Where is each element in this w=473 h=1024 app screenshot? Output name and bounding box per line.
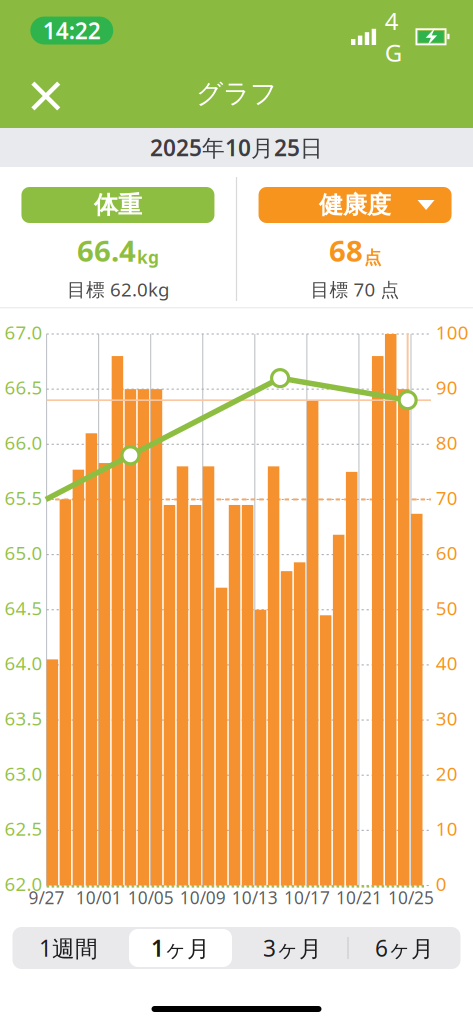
button[interactable]: 1ヶ月 [124,927,236,969]
staticText: 1週間 [39,933,98,963]
staticText: 66.0 [4,430,42,455]
staticText: 68 [329,231,363,270]
staticText: 64.0 [4,651,42,675]
button[interactable]: 閉じる [20,67,72,119]
staticText: 1ヶ月 [151,933,210,963]
button[interactable]: 6ヶ月 [348,927,460,969]
staticText: 10/21 [336,886,382,909]
button[interactable]: 1週間 [12,927,124,969]
staticText: 6ヶ月 [375,933,434,963]
staticText: 66.4 [77,231,136,270]
staticText: 70 [436,485,458,510]
button[interactable]: 3ヶ月 [236,927,348,969]
staticText: 10/01 [76,886,122,909]
staticText: 66.5 [4,375,42,400]
staticText: 点 [364,247,381,268]
staticText: 64.5 [4,596,42,620]
staticText: 目標 70 点 [311,277,400,302]
staticText: 80 [436,430,458,455]
staticText: 63.0 [4,761,42,786]
button[interactable]: 体重 [21,187,214,223]
staticText: 10/13 [232,886,278,909]
staticText: 10/05 [128,886,174,909]
staticText: 目標 62.0kg [67,277,169,302]
staticText: 67.0 [4,320,42,345]
staticText: 2025年10月25日 [150,132,323,162]
staticText: 4G [385,5,402,68]
staticText: 90 [436,375,458,400]
staticText: 0 [436,871,447,896]
staticText: 9/27 [29,886,65,909]
staticText: 3ヶ月 [263,933,322,963]
staticText: 14:22 [43,15,101,45]
staticText: 20 [436,761,458,786]
staticText: 60 [436,540,458,565]
staticText: 10 [436,816,458,841]
staticText: 体重 [94,190,142,220]
staticText: 65.0 [4,540,42,565]
button[interactable]: 健康度 [259,187,452,223]
staticText: 63.5 [4,706,42,731]
staticText: 10/25 [388,886,434,909]
staticText: kg [137,245,159,268]
staticText: 10/17 [284,886,330,909]
staticText: 健康度 [319,190,391,220]
staticText: 62.5 [4,816,42,841]
staticText: 30 [436,706,458,731]
staticText: 50 [436,596,458,620]
staticText: 40 [436,651,458,675]
staticText: グラフ [196,77,277,110]
staticText: 100 [436,320,469,345]
staticText: 10/09 [180,886,226,909]
staticText: 65.5 [4,485,42,510]
staticText: 62.0 [4,871,42,896]
